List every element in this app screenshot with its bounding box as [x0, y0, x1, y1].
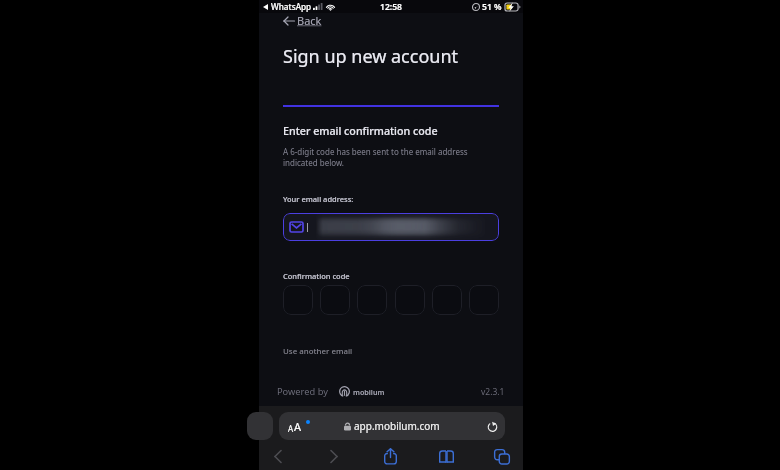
button[interactable]	[357, 285, 387, 315]
staticText: app.mobilum.com	[354, 419, 440, 433]
staticText: mobilum	[353, 387, 385, 397]
button[interactable]	[320, 285, 350, 315]
staticText: 51 %	[482, 1, 502, 13]
other: Reload page	[487, 421, 498, 432]
button[interactable]	[432, 285, 462, 315]
staticText: v2.3.1	[481, 386, 505, 398]
button[interactable]: Back	[283, 13, 322, 28]
button[interactable]	[283, 285, 313, 315]
staticText: Confirmation code	[283, 271, 350, 281]
staticText: A	[294, 419, 302, 434]
button[interactable]: Go back	[266, 444, 290, 468]
button[interactable]	[283, 213, 499, 241]
button[interactable]: A	[279, 412, 505, 440]
staticText: Back	[297, 13, 322, 28]
button[interactable]: Bookmarks	[434, 444, 458, 468]
button[interactable]: Share	[378, 444, 402, 468]
staticText: WhatsApp	[271, 1, 312, 12]
staticText: Powered by	[277, 385, 328, 398]
button[interactable]: Go forward	[322, 444, 346, 468]
button[interactable]	[469, 285, 499, 315]
staticText: Sign up new account	[283, 44, 459, 69]
staticText: 12:58	[380, 1, 403, 13]
staticText: A	[288, 423, 294, 434]
staticText: Your email address:	[283, 194, 354, 204]
button[interactable]	[395, 285, 425, 315]
staticText: Enter email confirmation code	[283, 124, 438, 139]
button[interactable]: Use another email	[283, 346, 353, 357]
staticText: A 6-digit code has been sent to the emai…	[283, 146, 468, 168]
button[interactable]: Tabs	[490, 444, 514, 468]
